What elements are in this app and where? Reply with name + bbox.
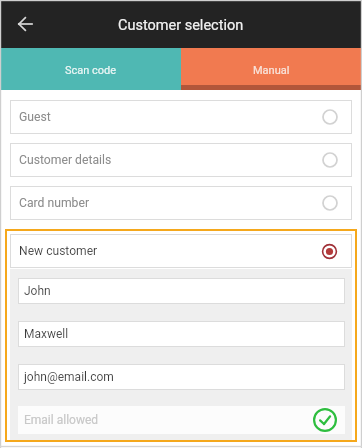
staticText: Customer details xyxy=(19,153,112,167)
staticText: Card number xyxy=(19,196,90,210)
button[interactable]: Customer details xyxy=(10,143,352,177)
staticText: Maxwell xyxy=(24,327,69,341)
staticText: john@email.com xyxy=(24,370,114,384)
staticText: Manual xyxy=(253,64,290,77)
button[interactable]: Back xyxy=(9,8,41,40)
button[interactable]: John xyxy=(18,278,345,304)
button[interactable]: New customer xyxy=(10,234,352,268)
staticText: John xyxy=(24,284,51,298)
button[interactable]: Manual xyxy=(181,48,362,90)
staticText: Guest xyxy=(19,110,51,124)
button[interactable]: Maxwell xyxy=(18,321,345,347)
staticText: Email allowed xyxy=(24,413,99,427)
button[interactable]: Guest xyxy=(10,100,352,134)
button[interactable]: Email allowed xyxy=(313,408,337,432)
staticText: New customer xyxy=(19,244,98,258)
button[interactable]: Scan code xyxy=(0,48,181,90)
staticText: Scan code xyxy=(65,64,117,77)
button[interactable]: john@email.com xyxy=(18,364,345,390)
button[interactable]: Email allowed xyxy=(18,406,345,434)
staticText: Customer selection xyxy=(118,17,244,34)
button[interactable]: Card number xyxy=(10,186,352,220)
